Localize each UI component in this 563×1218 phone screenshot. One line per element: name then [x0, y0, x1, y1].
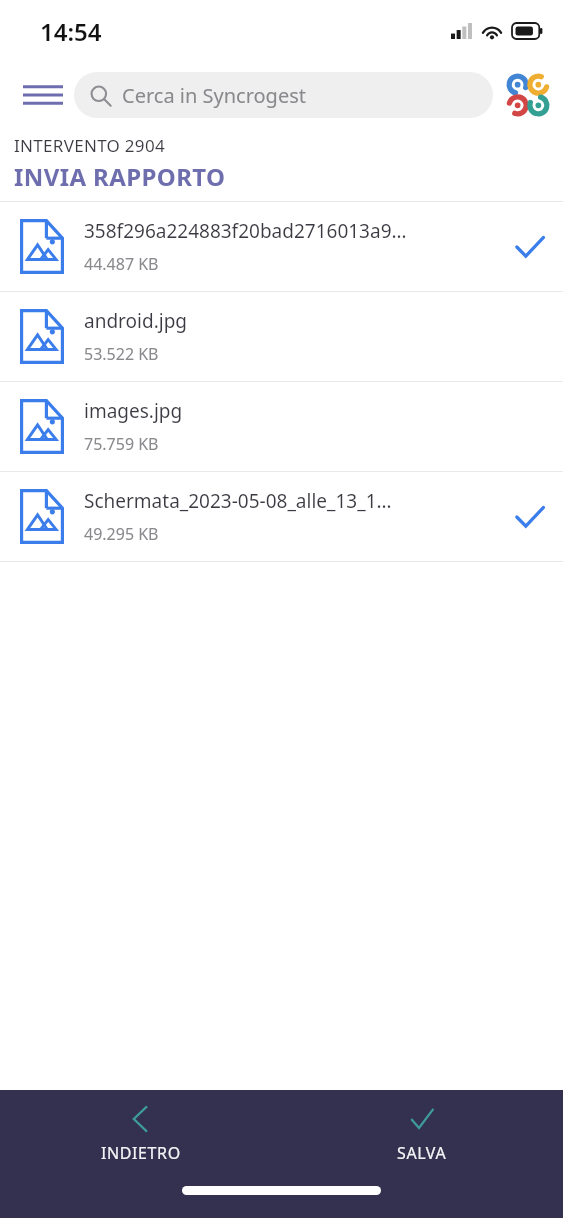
staticText: 53.522 KB: [84, 343, 159, 365]
button[interactable]: Menu: [12, 64, 74, 126]
staticText: INDIETRO: [101, 1142, 181, 1164]
staticText: INVIA RAPPORTO: [14, 160, 226, 193]
button[interactable]: 358f296a224883f20bad2716013a9…: [0, 202, 563, 291]
staticText: android.jpg: [84, 308, 187, 334]
staticText: Schermata_2023-05-08_alle_13_1…: [84, 488, 392, 514]
staticText: 14:54: [40, 15, 102, 48]
staticText: INTERVENTO 2904: [14, 134, 165, 157]
staticText: images.jpg: [84, 398, 183, 424]
staticText: 358f296a224883f20bad2716013a9…: [84, 218, 407, 244]
staticText: 75.759 KB: [84, 433, 159, 455]
button[interactable]: images.jpg: [0, 382, 563, 471]
staticText: 49.295 KB: [84, 523, 159, 545]
button[interactable]: INDIETRO: [0, 1090, 281, 1178]
staticText: Cerca in Syncrogest: [122, 82, 306, 109]
button[interactable]: SALVA: [281, 1090, 563, 1178]
button[interactable]: Cerca in Syncrogest: [74, 72, 493, 118]
button[interactable]: Syncrogest logo: [503, 70, 553, 120]
staticText: 44.487 KB: [84, 253, 159, 275]
button[interactable]: android.jpg: [0, 292, 563, 381]
button[interactable]: Schermata_2023-05-08_alle_13_1…: [0, 472, 563, 561]
staticText: SALVA: [397, 1142, 447, 1164]
